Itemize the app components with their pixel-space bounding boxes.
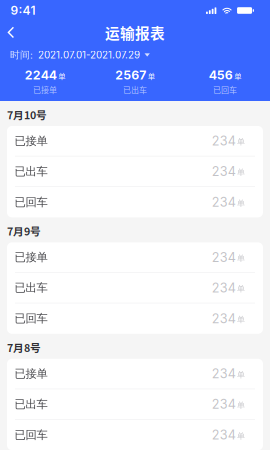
button[interactable]: 已接单	[7, 242, 263, 273]
button[interactable]: 已接单	[7, 359, 263, 389]
staticText: 456	[209, 68, 233, 82]
staticText: 单	[237, 370, 245, 380]
staticText: 单	[148, 71, 155, 81]
staticText: 234	[212, 250, 236, 265]
staticText: 已回车	[14, 195, 47, 209]
staticText: 单	[237, 137, 245, 147]
staticText: 234	[212, 133, 236, 148]
staticText: 2021.07.01-2021.07.29	[38, 49, 140, 61]
staticText: 2244	[25, 68, 57, 82]
staticText: 已出车	[123, 84, 147, 95]
staticText: 单	[237, 400, 245, 410]
staticText: 单	[237, 253, 245, 263]
staticText: 单	[237, 315, 245, 325]
staticText: 234	[212, 280, 236, 295]
staticText: 2567	[115, 68, 146, 82]
staticText: 已回车	[14, 311, 47, 326]
staticText: 已出车	[14, 397, 47, 411]
staticText: 7月10号	[7, 107, 47, 122]
staticText: 时间:	[10, 49, 33, 61]
staticText: 7月9号	[7, 223, 41, 239]
staticText: 运输报表	[105, 22, 165, 43]
staticText: 234	[212, 366, 236, 381]
staticText: 已回车	[14, 428, 47, 442]
button[interactable]: 已出车	[7, 156, 263, 187]
staticText: 单	[58, 71, 65, 81]
staticText: 234	[212, 164, 236, 179]
button[interactable]: 时间:	[0, 44, 156, 66]
staticText: 234	[212, 194, 236, 210]
staticText: 已回车	[213, 84, 237, 95]
staticText: 已接单	[14, 134, 47, 148]
staticText: 单	[237, 167, 245, 177]
staticText: 234	[212, 396, 236, 412]
staticText: 单	[237, 431, 245, 441]
staticText: 7月8号	[7, 340, 41, 355]
staticText: 9:41	[10, 3, 35, 18]
button[interactable]: 已出车	[7, 273, 263, 303]
staticText: 已接单	[14, 367, 47, 381]
staticText: 234	[212, 311, 236, 326]
staticText: 已出车	[14, 281, 47, 295]
staticText: 单	[234, 71, 241, 81]
button[interactable]: 已回车	[7, 420, 263, 450]
staticText: 234	[212, 427, 236, 443]
button[interactable]: 已回车	[7, 303, 263, 334]
staticText: 已出车	[14, 164, 47, 179]
button[interactable]: 已回车	[7, 187, 263, 217]
staticText: 已接单	[33, 84, 57, 95]
button[interactable]: 已出车	[7, 389, 263, 420]
staticText: 单	[237, 284, 245, 294]
button[interactable]: 已接单	[7, 126, 263, 156]
button[interactable]: Back	[0, 21, 22, 43]
staticText: 已接单	[14, 250, 47, 264]
staticText: 单	[237, 198, 245, 208]
